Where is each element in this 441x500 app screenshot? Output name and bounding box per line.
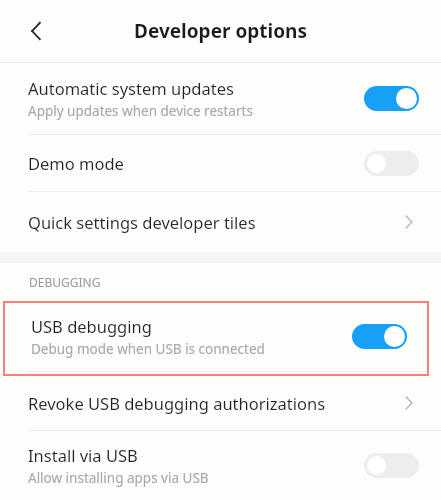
other: Open Quick settings developer tiles	[399, 212, 419, 232]
staticText: Apply updates when device restarts	[28, 102, 253, 120]
staticText: Install via USB	[28, 444, 138, 466]
button[interactable]: On	[364, 86, 419, 111]
staticText: Revoke USB debugging authorizations	[28, 392, 326, 414]
staticText: USB debugging	[31, 315, 152, 337]
staticText: Developer options	[134, 18, 307, 44]
button[interactable]: USB debugging	[3, 301, 429, 371]
button[interactable]: Demo mode	[0, 135, 441, 191]
staticText: DEBUGGING	[29, 274, 101, 290]
button[interactable]: Revoke USB debugging authorizations	[0, 376, 441, 430]
button[interactable]: Back	[12, 7, 60, 55]
button[interactable]: Quick settings developer tiles	[0, 192, 441, 252]
other: Revoke USB debugging authorizations	[399, 393, 419, 413]
staticText: Allow installing apps via USB	[28, 469, 209, 487]
button[interactable]: Off	[364, 453, 419, 478]
staticText: Debug mode when USB is connected	[31, 340, 265, 358]
staticText: Quick settings developer tiles	[28, 211, 256, 233]
button[interactable]: On	[352, 324, 407, 349]
staticText: Demo mode	[28, 152, 124, 174]
staticText: Automatic system updates	[28, 77, 234, 99]
button[interactable]: Automatic system updates	[0, 63, 441, 134]
button[interactable]: Install via USB	[0, 431, 441, 500]
button[interactable]: Off	[364, 151, 419, 176]
